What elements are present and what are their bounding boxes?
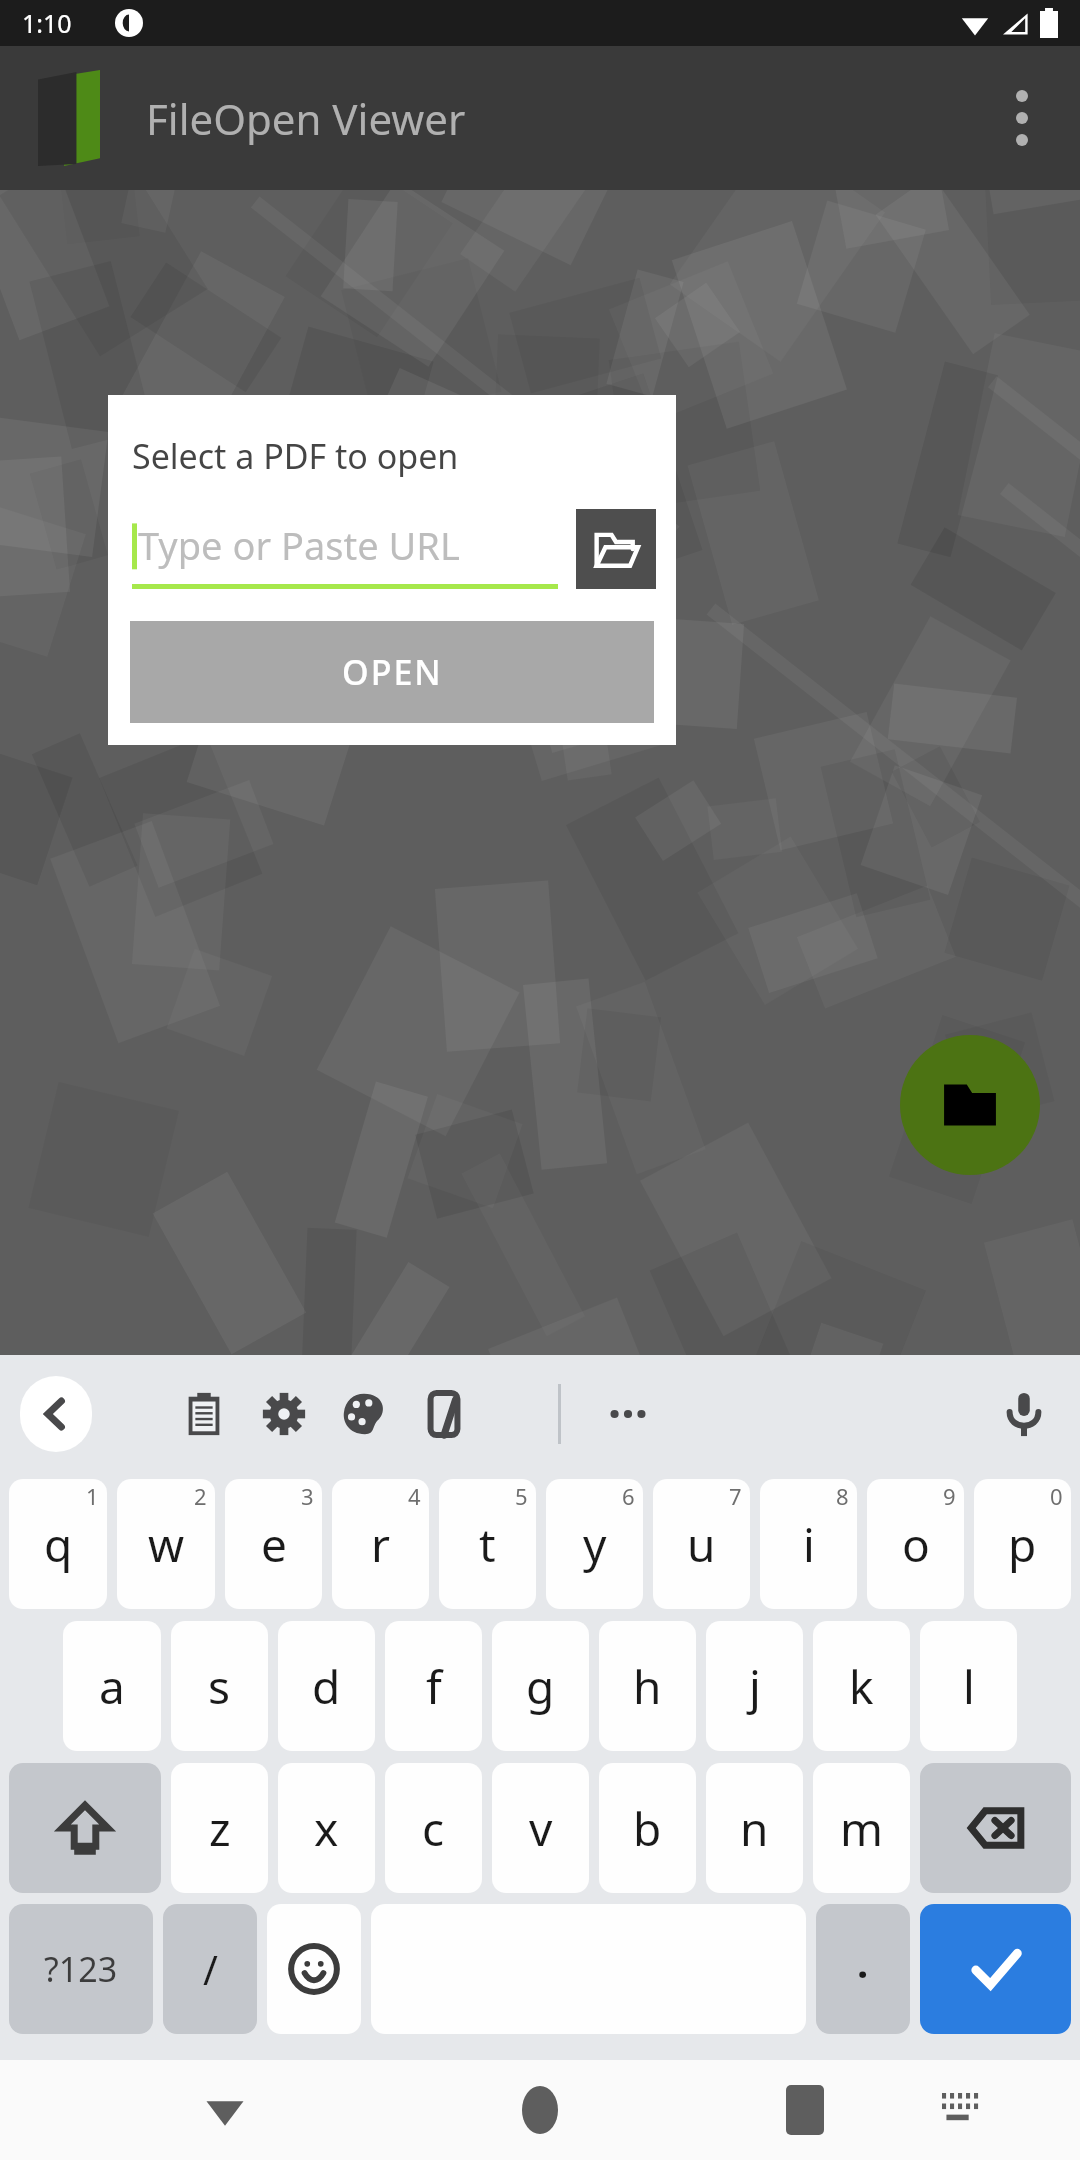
staticText: o <box>902 1513 930 1576</box>
button[interactable]: Back <box>20 1376 92 1452</box>
button[interactable]: Home <box>495 2065 585 2155</box>
button[interactable]: a <box>63 1621 161 1751</box>
button[interactable]: Type or Paste URL <box>132 507 558 589</box>
button[interactable]: f <box>385 1621 482 1751</box>
button[interactable]: h <box>599 1621 696 1751</box>
staticText: 5 <box>515 1481 528 1511</box>
staticText: 8 <box>836 1481 849 1511</box>
button[interactable]: Enter <box>920 1904 1071 2034</box>
button[interactable]: Handwriting <box>408 1378 480 1450</box>
button[interactable]: g <box>492 1621 589 1751</box>
button[interactable]: j <box>706 1621 803 1751</box>
button[interactable]: n <box>706 1763 803 1893</box>
staticText: 7 <box>729 1481 742 1511</box>
staticText: v <box>529 1797 553 1860</box>
button[interactable]: k <box>813 1621 910 1751</box>
staticText: 3 <box>301 1481 314 1511</box>
staticText: q <box>44 1513 73 1576</box>
button[interactable]: o <box>867 1479 964 1609</box>
staticText: b <box>633 1797 662 1860</box>
staticText: r <box>371 1513 390 1576</box>
staticText: n <box>740 1797 769 1860</box>
staticText: y <box>583 1513 607 1576</box>
button[interactable]: Switch keyboard <box>922 2070 1002 2150</box>
staticText: OPEN <box>342 649 443 695</box>
staticText: g <box>526 1655 555 1718</box>
staticText: s <box>208 1655 231 1718</box>
staticText: h <box>633 1655 662 1718</box>
button[interactable]: Shift <box>9 1763 161 1893</box>
button[interactable]: u <box>653 1479 750 1609</box>
staticText: w <box>148 1513 185 1576</box>
button[interactable]: v <box>492 1763 589 1893</box>
button[interactable]: More <box>592 1378 664 1450</box>
button[interactable]: Browse files <box>576 509 656 589</box>
staticText: m <box>840 1797 884 1860</box>
staticText: u <box>687 1513 716 1576</box>
staticText: t <box>479 1513 496 1576</box>
button[interactable]: ?123 <box>9 1904 153 2034</box>
button[interactable]: w <box>117 1479 215 1609</box>
staticText: 6 <box>622 1481 635 1511</box>
staticText: f <box>426 1655 442 1718</box>
button[interactable]: OPEN <box>130 621 654 723</box>
button[interactable]: Backspace <box>920 1763 1071 1893</box>
button[interactable]: . <box>816 1904 910 2034</box>
button[interactable]: More options <box>974 70 1070 166</box>
button[interactable]: e <box>225 1479 322 1609</box>
staticText: l <box>963 1655 975 1718</box>
staticText: i <box>803 1513 815 1576</box>
staticText: 1:10 <box>22 6 72 40</box>
button[interactable]: Open folder <box>900 1035 1040 1175</box>
staticText: e <box>261 1513 287 1576</box>
button[interactable]: Recents <box>760 2065 850 2155</box>
button[interactable]: Clipboard <box>168 1378 240 1450</box>
button[interactable]: Back <box>180 2065 270 2155</box>
staticText: ?123 <box>44 1946 118 1992</box>
staticText: Type or Paste URL <box>138 519 460 571</box>
button[interactable]: l <box>920 1621 1017 1751</box>
button[interactable]: b <box>599 1763 696 1893</box>
button[interactable]: c <box>385 1763 482 1893</box>
button[interactable]: r <box>332 1479 429 1609</box>
button[interactable]: m <box>813 1763 910 1893</box>
staticText: Select a PDF to open <box>132 433 459 479</box>
staticText: a <box>99 1655 125 1718</box>
staticText: FileOpen Viewer <box>146 90 466 147</box>
button[interactable]: Voice input <box>988 1378 1060 1450</box>
staticText: p <box>1008 1513 1037 1576</box>
staticText: / <box>203 1942 218 1996</box>
button[interactable]: / <box>163 1904 257 2034</box>
staticText: . <box>857 1935 869 1989</box>
staticText: k <box>849 1655 874 1718</box>
button[interactable]: i <box>760 1479 857 1609</box>
button[interactable]: d <box>278 1621 375 1751</box>
button[interactable]: Emoji <box>267 1904 361 2034</box>
staticText: z <box>209 1797 231 1860</box>
staticText: 0 <box>1050 1481 1063 1511</box>
staticText: 2 <box>194 1481 207 1511</box>
button[interactable]: Settings <box>248 1378 320 1450</box>
button[interactable]: y <box>546 1479 643 1609</box>
button[interactable]: z <box>171 1763 268 1893</box>
staticText: 4 <box>408 1481 421 1511</box>
button[interactable]: Theme <box>328 1378 400 1450</box>
staticText: d <box>312 1655 341 1718</box>
staticText: 9 <box>943 1481 956 1511</box>
staticText: j <box>749 1655 761 1718</box>
button[interactable]: q <box>9 1479 107 1609</box>
button[interactable]: t <box>439 1479 536 1609</box>
staticText: c <box>422 1797 445 1860</box>
staticText: 1 <box>86 1481 99 1511</box>
button[interactable]: p <box>974 1479 1071 1609</box>
button[interactable]: x <box>278 1763 375 1893</box>
staticText: x <box>314 1797 339 1860</box>
button[interactable]: s <box>171 1621 268 1751</box>
